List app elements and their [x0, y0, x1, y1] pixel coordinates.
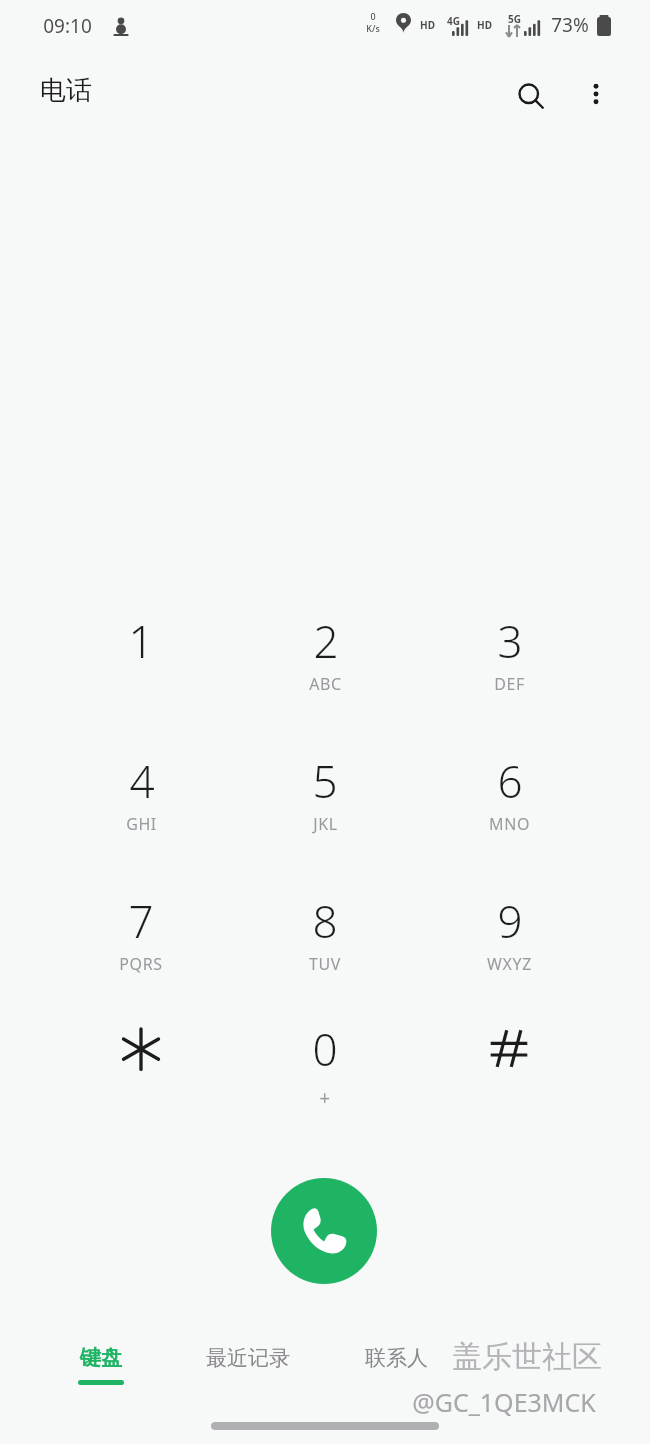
staticText: 5G [508, 12, 521, 26]
staticText: JKL [313, 813, 338, 835]
staticText: 9 [497, 891, 523, 951]
button[interactable]: 键盘 [46, 1336, 156, 1400]
staticText: 09:10 [43, 13, 92, 39]
staticText: GHI [126, 813, 157, 835]
button[interactable]: 4 [69, 735, 213, 859]
button[interactable]: 1 [69, 595, 213, 719]
staticText: 6 [497, 751, 523, 811]
button[interactable]: 3 [437, 595, 581, 719]
button[interactable]: Call [271, 1178, 377, 1284]
staticText: 盖乐世社区 [452, 1338, 602, 1376]
button[interactable]: Search [505, 70, 557, 122]
staticText: 最近记录 [206, 1345, 290, 1371]
staticText: MNO [489, 813, 530, 835]
staticText: HD [477, 18, 492, 32]
staticText: 0 [370, 10, 376, 22]
staticText: 1 [128, 611, 154, 671]
staticText: 4G [447, 14, 460, 28]
staticText: 联系人 [365, 1345, 428, 1371]
staticText: 0 [312, 1019, 338, 1079]
staticText: 7 [128, 891, 154, 951]
button[interactable]: 0 [253, 1003, 397, 1127]
staticText: @GC_1QE3MCK [412, 1385, 596, 1419]
staticText: 3 [497, 611, 523, 671]
button[interactable]: 最近记录 [180, 1336, 316, 1394]
staticText: WXYZ [487, 953, 532, 975]
staticText: ABC [309, 673, 342, 695]
button[interactable]: 6 [437, 735, 581, 859]
button[interactable]: 7 [69, 875, 213, 999]
staticText: DEF [494, 673, 525, 695]
button[interactable]: 5 [253, 735, 397, 859]
button[interactable]: 2 [253, 595, 397, 719]
staticText: 4 [129, 751, 155, 811]
staticText: + [319, 1085, 331, 1111]
staticText: TUV [309, 953, 341, 975]
staticText: PQRS [119, 953, 163, 975]
button[interactable]: 8 [253, 875, 397, 999]
staticText: 2 [313, 611, 339, 671]
staticText: 键盘 [80, 1345, 122, 1371]
button[interactable]: More options [572, 70, 620, 118]
staticText: 5 [312, 751, 338, 811]
button[interactable]: 联系人 [340, 1336, 452, 1394]
staticText: HD [420, 18, 435, 32]
staticText: 电话 [40, 74, 92, 107]
staticText: K/s [366, 22, 380, 34]
button[interactable]: 9 [437, 875, 581, 999]
staticText: 8 [312, 891, 338, 951]
button[interactable] [69, 1003, 213, 1127]
button[interactable] [437, 1003, 581, 1127]
staticText: 73% [551, 12, 589, 38]
